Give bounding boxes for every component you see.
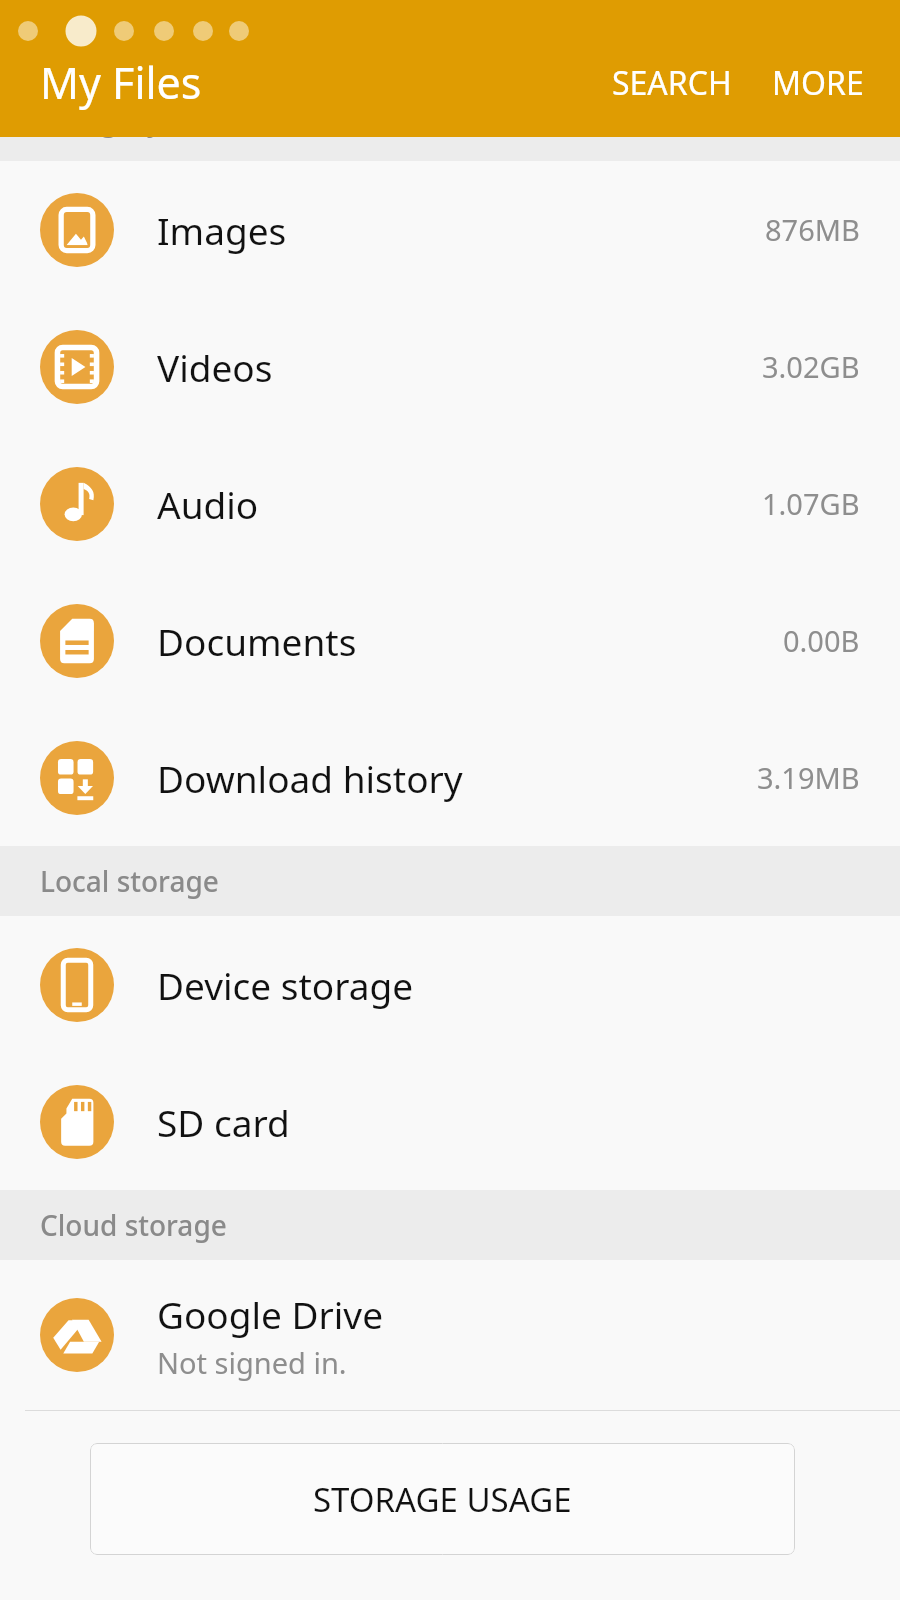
staticText: Images <box>157 205 287 255</box>
staticText: 3.19MB <box>757 758 860 797</box>
staticText: Cloud storage <box>40 1206 227 1244</box>
staticText: MORE <box>772 61 864 105</box>
staticText: Audio <box>157 479 259 529</box>
button[interactable]: SEARCH <box>592 45 752 121</box>
staticText: 876MB <box>765 210 860 249</box>
button[interactable]: SD card <box>0 1053 900 1190</box>
button[interactable]: Audio <box>0 435 900 572</box>
staticText: 3.02GB <box>762 347 860 386</box>
other: Page indicator <box>0 0 900 137</box>
staticText: Videos <box>157 342 273 392</box>
button[interactable]: MORE <box>752 45 900 121</box>
staticText: Category <box>40 101 162 139</box>
staticText: Download history <box>157 753 463 803</box>
button[interactable]: Device storage <box>0 916 900 1053</box>
button[interactable]: Download history <box>0 709 900 846</box>
button[interactable]: Videos <box>0 298 900 435</box>
staticText: 0.00B <box>783 621 860 660</box>
staticText: Local storage <box>40 862 219 900</box>
button[interactable]: Google Drive <box>0 1260 900 1410</box>
staticText: SD card <box>157 1097 290 1147</box>
button[interactable]: Images <box>0 161 900 298</box>
staticText: Google Drive <box>157 1289 383 1339</box>
staticText: SEARCH <box>612 61 732 105</box>
staticText: Not signed in. <box>157 1343 347 1382</box>
staticText: Documents <box>157 616 357 666</box>
staticText: My Files <box>40 53 202 112</box>
staticText: STORAGE USAGE <box>313 1477 572 1522</box>
button[interactable]: STORAGE USAGE <box>90 1443 795 1555</box>
button[interactable]: Documents <box>0 572 900 709</box>
staticText: 1.07GB <box>762 484 860 523</box>
staticText: Device storage <box>157 960 414 1010</box>
